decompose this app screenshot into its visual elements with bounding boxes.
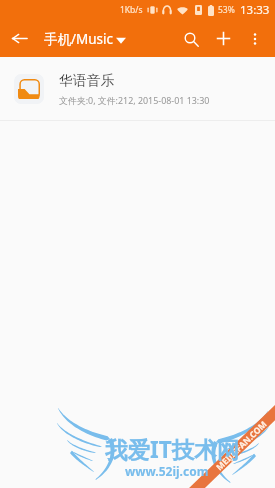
staticText: 53% (218, 4, 235, 16)
staticText: 文件夹:0, 文件:212, 2015-08-01 13:30 (59, 94, 210, 106)
staticText: 我爱IT技术网 (105, 434, 240, 465)
staticText: 华语音乐 (59, 72, 115, 89)
button[interactable]: 华语音乐 (0, 57, 275, 120)
button[interactable]: Back (0, 20, 38, 57)
staticText: www.52ij.com (125, 463, 209, 479)
staticText: MEIJIEFAN.COM (213, 418, 269, 472)
staticText: 手机/Music (44, 30, 114, 48)
button[interactable]: Search (175, 23, 207, 55)
button[interactable]: More options (240, 24, 270, 54)
button[interactable]: Add (207, 22, 240, 55)
staticText: 1Kb/s (120, 4, 143, 16)
button[interactable]: 手机/Music (44, 30, 132, 48)
staticText: 13:33 (240, 2, 270, 18)
